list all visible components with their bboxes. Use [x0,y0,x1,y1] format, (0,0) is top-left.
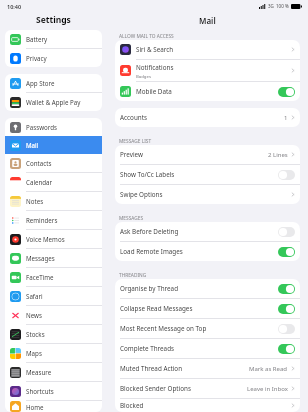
staticText: Calendar [26,178,53,186]
staticText: Safari [26,292,43,300]
button[interactable]: Blocked [115,399,300,412]
staticText: Accounts [120,113,147,122]
button[interactable]: Preview [115,145,300,165]
button[interactable]: Show To/Cc Labels [115,165,300,185]
button[interactable]: Contacts [5,154,102,172]
staticText: ALLOW MAIL TO ACCESS [119,33,174,40]
button[interactable]: FaceTime [5,268,102,286]
button[interactable]: Complete Threads [115,339,300,359]
button[interactable]: Privacy [5,49,102,67]
staticText: 10:40 [7,3,22,10]
staticText: Swipe Options [120,190,163,199]
button[interactable]: Calendar [5,173,102,191]
staticText: Maps [26,349,42,357]
button[interactable]: Mail [5,136,102,154]
button[interactable]: Collapse Read Messages [115,299,300,319]
staticText: Shortcuts [26,387,54,395]
button[interactable]: Passwords [5,118,102,136]
staticText: App Store [26,79,55,87]
staticText: 100 % [276,3,289,9]
staticText: Notes [26,197,44,205]
staticText: Mail [26,141,39,149]
button[interactable]: Most Recent Message on Top [115,319,300,339]
staticText: Wallet & Apple Pay [26,98,81,106]
staticText: Mail [199,15,216,26]
staticText: Settings [36,14,71,26]
button[interactable]: Safari [5,287,102,305]
staticText: News [26,311,42,319]
staticText: Preview [120,150,143,159]
staticText: Collapse Read Messages [120,304,193,313]
button[interactable]: Mobile Data [115,82,300,101]
staticText: Home [26,403,44,411]
button[interactable]: Notes [5,192,102,210]
button[interactable]: App Store [5,74,102,92]
staticText: Measure [26,368,52,376]
staticText: Complete Threads [120,344,175,353]
staticText: Notifications [136,63,174,72]
button[interactable]: Ask Before Deleting [115,222,300,242]
staticText: 3G [268,3,274,9]
button[interactable]: Accounts [115,108,300,127]
staticText: Privacy [26,54,47,62]
button[interactable]: Home [5,401,102,412]
staticText: Ask Before Deleting [120,227,179,236]
button[interactable]: Battery [5,30,102,48]
button[interactable]: Messages [5,249,102,267]
button[interactable]: Organise by Thread [115,279,300,299]
staticText: Stocks [26,330,45,338]
staticText: Badges [136,73,151,79]
staticText: Most Recent Message on Top [120,324,207,333]
button[interactable]: Wallet & Apple Pay [5,93,102,111]
button[interactable]: News [5,306,102,324]
staticText: MESSAGE LIST [119,138,152,145]
staticText: Organise by Thread [120,284,179,293]
staticText: Battery [26,35,48,43]
button[interactable]: Siri & Search [115,40,300,60]
staticText: Mark as Read [249,365,288,373]
button[interactable]: Voice Memos [5,230,102,248]
staticText: Passwords [26,123,57,131]
staticText: Leave in Inbox [247,385,288,393]
staticText: FaceTime [26,273,54,281]
staticText: Mobile Data [136,87,172,96]
staticText: Blocked Sender Options [120,384,191,393]
staticText: 1 [284,114,288,122]
staticText: THREADING [119,272,147,279]
button[interactable]: Reminders [5,211,102,229]
button[interactable]: Blocked Sender Options [115,379,300,399]
staticText: Voice Memos [26,235,65,243]
button[interactable]: Shortcuts [5,382,102,400]
button[interactable]: Swipe Options [115,185,300,204]
staticText: Messages [26,254,55,262]
staticText: Reminders [26,216,58,224]
staticText: Muted Thread Action [120,364,183,373]
button[interactable]: Load Remote Images [115,242,300,261]
button[interactable]: Muted Thread Action [115,359,300,379]
button[interactable]: Maps [5,344,102,362]
staticText: Siri & Search [136,45,174,54]
button[interactable]: Notifications [115,60,300,82]
staticText: Contacts [26,159,52,167]
staticText: 2 Lines [268,151,288,159]
staticText: Show To/Cc Labels [120,170,175,179]
button[interactable]: Measure [5,363,102,381]
button[interactable]: Stocks [5,325,102,343]
staticText: Blocked [120,401,144,410]
staticText: Load Remote Images [120,247,183,256]
staticText: MESSAGES [119,215,144,222]
